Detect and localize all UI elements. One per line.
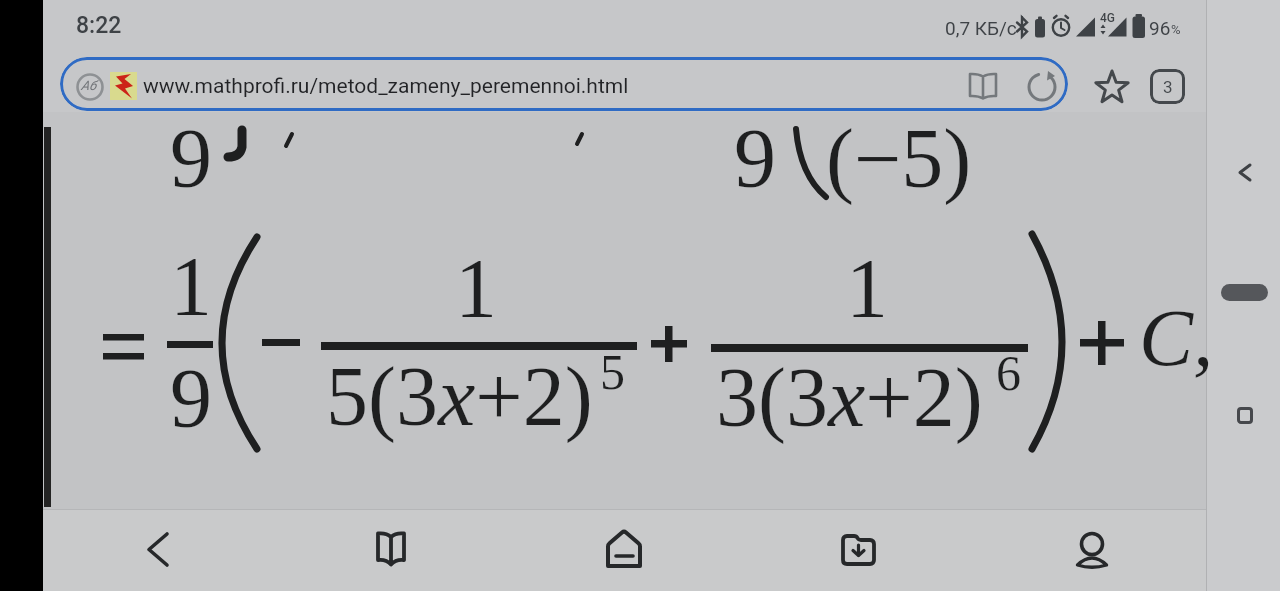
staticText: 96 (1149, 17, 1171, 39)
button[interactable] (1150, 69, 1185, 104)
staticText: 3(3x+2) (716, 351, 983, 444)
button[interactable] (1093, 68, 1131, 106)
button[interactable] (1221, 284, 1268, 301)
button[interactable] (593, 517, 657, 581)
staticText: 9 (734, 112, 776, 205)
staticText: 0,7 КБ/с (945, 17, 1017, 39)
staticText: 3 (1163, 77, 1173, 97)
staticText: 5 (600, 344, 625, 399)
button[interactable] (125, 517, 189, 581)
staticText: 8:22 (76, 12, 122, 39)
staticText: 1 (170, 240, 212, 333)
staticText: 1 (455, 242, 497, 335)
staticText: 1 (846, 242, 888, 335)
staticText: 9 (170, 352, 212, 445)
button[interactable] (359, 517, 423, 581)
button[interactable] (1026, 71, 1058, 103)
staticText: (−5) (826, 112, 972, 205)
staticText: 9 (170, 112, 212, 205)
button[interactable] (1216, 143, 1274, 201)
staticText: 6 (996, 345, 1021, 400)
staticText: 4G (1100, 11, 1115, 25)
button[interactable] (827, 517, 891, 581)
staticText: Аб (81, 78, 97, 93)
button[interactable] (60, 57, 1068, 111)
staticText: 5(3x+2) (326, 350, 593, 443)
staticText: www.mathprofi.ru/metod_zameny_peremennoi… (143, 74, 629, 99)
button[interactable] (1061, 517, 1125, 581)
staticText: % (1171, 22, 1181, 37)
button[interactable] (1237, 407, 1253, 424)
staticText: C, (1139, 293, 1214, 383)
button[interactable] (966, 72, 1002, 102)
